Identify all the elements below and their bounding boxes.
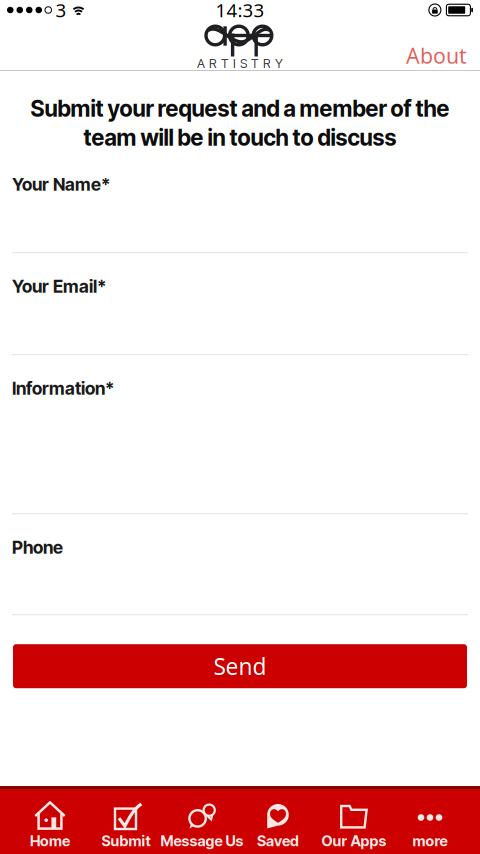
staticText: About — [406, 41, 467, 70]
staticText: T — [251, 56, 259, 71]
staticText: A — [197, 56, 205, 71]
staticText: Y — [275, 56, 283, 71]
staticText: Your Email* — [12, 276, 106, 297]
staticText: R — [209, 56, 217, 71]
staticText: 14:33 — [215, 0, 264, 22]
staticText: more — [412, 832, 447, 850]
staticText: Your Name* — [12, 174, 110, 195]
staticText: Submit — [101, 832, 150, 850]
staticText: Our Apps — [321, 832, 386, 850]
button[interactable]: Saved — [240, 786, 316, 854]
button[interactable]: more — [392, 786, 468, 854]
staticText: Phone — [12, 537, 63, 558]
staticText: team will be in touch to discuss — [83, 124, 396, 151]
staticText: Home — [30, 832, 70, 850]
staticText: 3 — [55, 0, 66, 22]
button[interactable]: Message Us — [164, 786, 240, 854]
staticText: Submit your request and a member of the — [30, 95, 449, 122]
button[interactable]: About — [393, 33, 480, 78]
staticText: Saved — [257, 832, 299, 850]
button[interactable]: Home — [12, 786, 88, 854]
staticText: Message Us — [160, 832, 243, 850]
button[interactable]: Submit — [88, 786, 164, 854]
staticText: R — [263, 56, 271, 71]
staticText: I — [233, 56, 236, 71]
staticText: Information* — [12, 378, 114, 399]
button[interactable]: Send — [13, 644, 467, 688]
button[interactable]: Our Apps — [316, 786, 392, 854]
staticText: T — [221, 56, 229, 71]
staticText: S — [240, 56, 247, 71]
staticText: Send — [213, 651, 266, 681]
